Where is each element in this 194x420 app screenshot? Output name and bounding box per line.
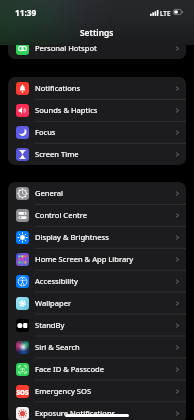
button[interactable]: StandBy	[8, 314, 186, 336]
button[interactable]: Control Centre	[8, 204, 186, 226]
button[interactable]: Display & Brightness	[8, 226, 186, 248]
button[interactable]: Home Screen & App Library	[8, 248, 186, 270]
staticText: Exposure Notifications	[35, 408, 116, 418]
button[interactable]: Wallpaper	[8, 292, 186, 314]
button[interactable]: Face ID & Passcode	[8, 358, 186, 380]
button[interactable]: Personal Hotspot	[8, 37, 186, 59]
staticText: Screen Time	[35, 149, 79, 159]
staticText: Settings	[80, 27, 114, 38]
button[interactable]: Focus	[8, 121, 186, 143]
staticText: Sounds & Haptics	[35, 105, 98, 115]
button[interactable]: Notifications	[8, 77, 186, 99]
staticText: Personal Hotspot	[35, 43, 97, 53]
staticText: SOS	[16, 388, 29, 396]
staticText: Control Centre	[35, 210, 88, 220]
button[interactable]: Screen Time	[8, 143, 186, 165]
staticText: 11:39	[15, 7, 37, 18]
staticText: LTE	[160, 9, 171, 18]
staticText: Display & Brightness	[35, 232, 109, 242]
button[interactable]: Accessibility	[8, 270, 186, 292]
staticText: Emergency SOS	[35, 386, 92, 396]
staticText: Focus	[35, 127, 56, 137]
button[interactable]: Sounds & Haptics	[8, 99, 186, 121]
button[interactable]: SOS	[8, 380, 186, 402]
button[interactable]: Siri & Search	[8, 336, 186, 358]
staticText: Accessibility	[35, 276, 78, 286]
button[interactable]: General	[8, 182, 186, 204]
staticText: Face ID & Passcode	[35, 364, 105, 374]
staticText: Siri & Search	[35, 342, 80, 352]
staticText: StandBy	[35, 320, 65, 330]
staticText: Notifications	[35, 83, 81, 93]
staticText: Home Screen & App Library	[35, 254, 134, 264]
button[interactable]: Exposure Notifications	[8, 402, 186, 420]
staticText: General	[35, 188, 63, 198]
staticText: Wallpaper	[35, 298, 72, 308]
